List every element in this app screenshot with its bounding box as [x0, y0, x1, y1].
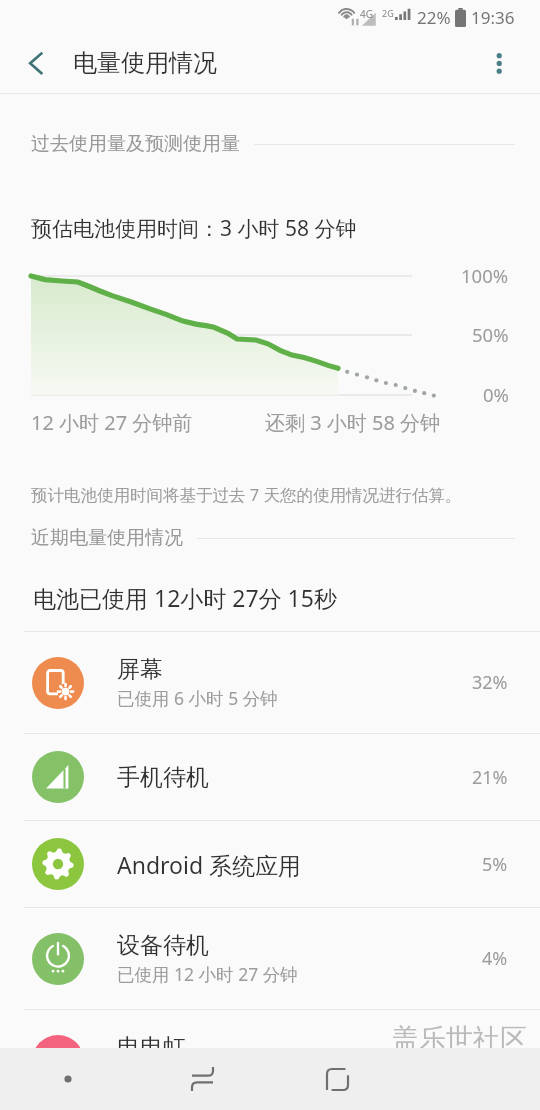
staticText: Android 系统应用	[117, 849, 302, 880]
staticText: 已使用 1 小时 2 分钟	[117, 1064, 278, 1088]
staticText: 100%	[461, 263, 509, 288]
button[interactable]: Menu	[0, 1048, 135, 1110]
staticText: 预计电池使用时间将基于过去 7 天您的使用情况进行估算。	[31, 483, 462, 506]
button[interactable]: More options	[482, 35, 540, 93]
staticText: 12 小时 27 分钟前	[31, 409, 193, 436]
staticText: 还剩 3 小时 58 分钟	[265, 409, 441, 436]
button[interactable]: 手机待机	[0, 734, 540, 820]
staticText: 19:36	[471, 6, 515, 29]
staticText: 4%	[482, 946, 508, 971]
staticText: 设备待机	[117, 931, 209, 960]
staticText: 50%	[472, 322, 509, 347]
button[interactable]: Back	[270, 1048, 405, 1110]
staticText: 32%	[472, 670, 508, 695]
staticText: 22%	[417, 6, 451, 29]
button[interactable]: Recents	[135, 1048, 270, 1110]
staticText: 电电虹	[117, 1033, 186, 1062]
button[interactable]: 电电虹	[0, 1010, 540, 1110]
staticText: 盖乐世社区	[392, 1022, 527, 1056]
staticText: 5%	[482, 852, 508, 877]
staticText: 4G	[360, 7, 373, 21]
staticText: 已使用 12 小时 27 分钟	[117, 962, 298, 986]
button[interactable]: Back	[0, 34, 60, 93]
staticText: 已使用 6 小时 5 分钟	[117, 686, 278, 710]
staticText: 预估电池使用时间：3 小时 58 分钟	[31, 214, 357, 243]
staticText: 电池已使用 12小时 27分 15秒	[33, 582, 337, 613]
staticText: 0%	[483, 382, 509, 407]
button[interactable]: 设备待机	[0, 908, 540, 1009]
staticText: 近期电量使用情况	[31, 526, 183, 550]
staticText: 屏幕	[117, 655, 163, 684]
button[interactable]: 屏幕	[0, 632, 540, 733]
staticText: 21%	[472, 765, 508, 790]
staticText: 过去使用量及预测使用量	[31, 132, 240, 156]
staticText: 2G	[382, 7, 394, 19]
staticText: 手机待机	[117, 763, 209, 792]
button[interactable]: Android 系统应用	[0, 821, 540, 907]
staticText: 电量使用情况	[73, 48, 217, 78]
